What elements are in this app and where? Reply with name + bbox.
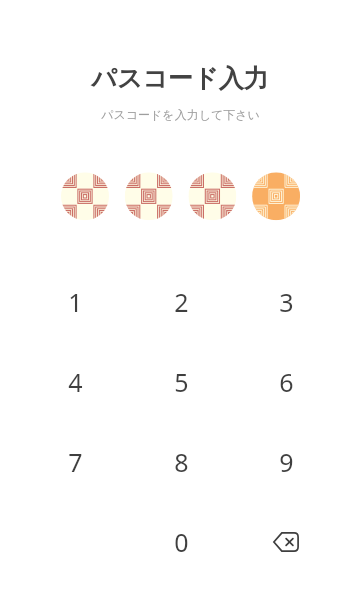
button[interactable]: 3 — [251, 267, 321, 337]
staticText: 8 — [174, 445, 189, 479]
staticText: パスコードを入力して下さい — [101, 107, 260, 122]
staticText: 5 — [174, 365, 189, 399]
button[interactable]: 0 — [146, 507, 216, 577]
staticText: 2 — [174, 285, 189, 319]
button[interactable]: 8 — [146, 427, 216, 497]
button[interactable]: 5 — [146, 347, 216, 417]
staticText: 3 — [279, 285, 294, 319]
button[interactable]: 7 — [40, 427, 110, 497]
button[interactable]: 4 — [40, 347, 110, 417]
staticText: パスコード入力 — [91, 63, 269, 94]
staticText: 7 — [68, 445, 83, 479]
staticText: 0 — [174, 525, 189, 559]
staticText: 1 — [68, 285, 83, 319]
button[interactable]: Backspace — [251, 507, 321, 577]
button[interactable]: 6 — [251, 347, 321, 417]
staticText: 9 — [279, 445, 294, 479]
button[interactable]: 1 — [40, 267, 110, 337]
staticText: 6 — [279, 365, 294, 399]
button[interactable]: 9 — [251, 427, 321, 497]
staticText: 4 — [68, 365, 83, 399]
button[interactable]: 2 — [146, 267, 216, 337]
